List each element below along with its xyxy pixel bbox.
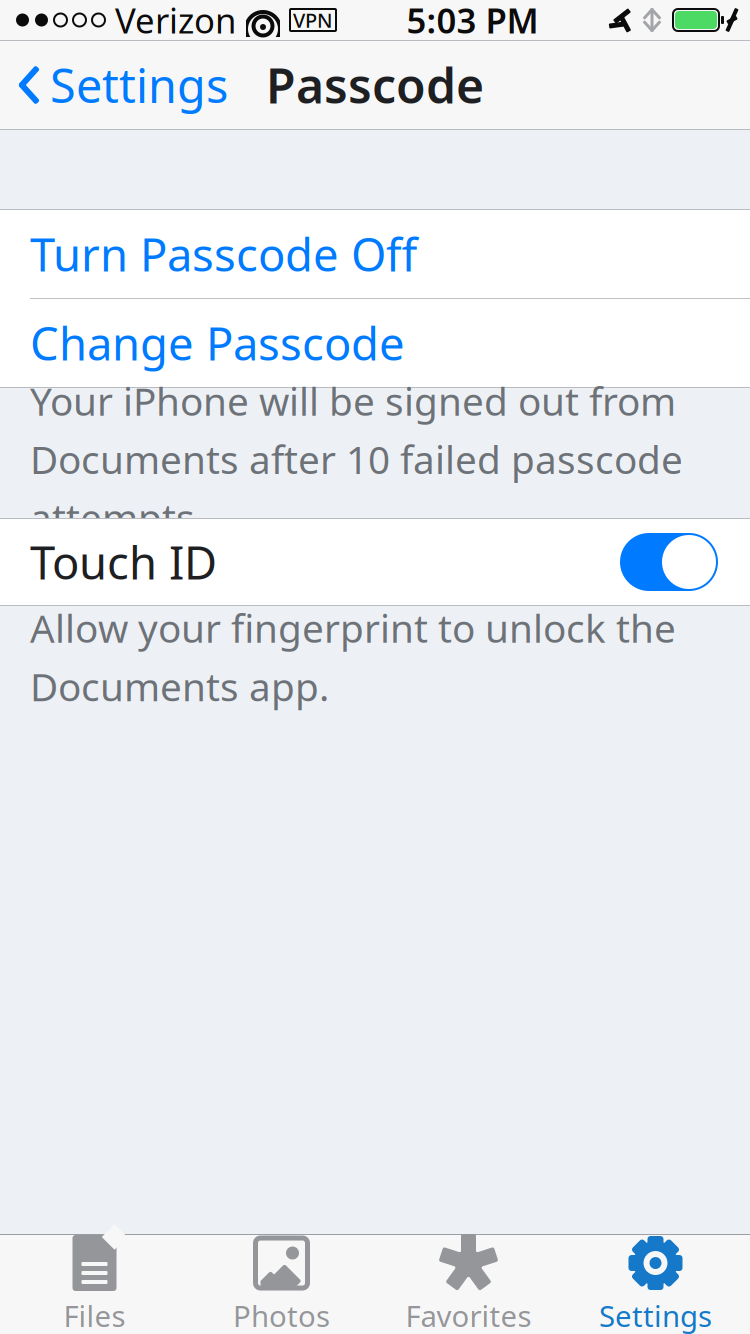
button[interactable]: Change Passcode — [0, 299, 750, 387]
staticText: Your iPhone will be signed out from Docu… — [30, 375, 683, 543]
staticText: Files — [63, 1296, 125, 1334]
staticText: VPN — [293, 7, 333, 33]
staticText: Passcode — [266, 53, 484, 117]
staticText: 5:03 PM — [406, 0, 538, 43]
button[interactable]: Settings — [562, 1234, 749, 1334]
staticText: Touch ID — [30, 532, 217, 592]
button[interactable]: Photos — [188, 1234, 375, 1334]
staticText: Favorites — [405, 1296, 531, 1334]
button[interactable]: Files — [1, 1234, 188, 1334]
staticText: Settings — [599, 1296, 712, 1334]
staticText: Change Passcode — [30, 313, 405, 373]
staticText: Photos — [233, 1296, 330, 1334]
staticText: Settings — [50, 54, 228, 116]
button[interactable]: Favorites — [375, 1234, 562, 1334]
button[interactable]: Settings — [0, 40, 228, 130]
staticText: Verizon — [115, 0, 236, 43]
staticText: Turn Passcode Off — [30, 224, 417, 284]
button[interactable]: Turn Passcode Off — [0, 210, 750, 298]
button[interactable]: Touch ID — [0, 519, 750, 605]
staticText: Allow your fingerprint to unlock the Doc… — [30, 602, 676, 712]
